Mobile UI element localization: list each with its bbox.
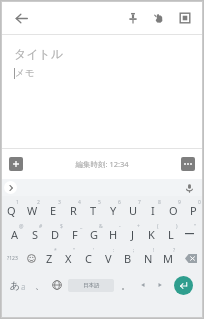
- button[interactable]: N: [138, 246, 158, 270]
- button[interactable]: Enter: [168, 270, 199, 300]
- button[interactable]: K: [142, 222, 161, 246]
- staticText: あ: [10, 279, 21, 292]
- staticText: メモ: [15, 67, 35, 79]
- staticText: H: [109, 227, 118, 242]
- staticText: R: [70, 203, 77, 218]
- staticText: 8: [158, 199, 161, 206]
- staticText: 9: [178, 199, 181, 206]
- staticText: I: [151, 203, 155, 218]
- button[interactable]: W: [22, 198, 43, 222]
- staticText: (: [157, 223, 159, 230]
- staticText: &: [99, 223, 103, 230]
- staticText: ー: [184, 227, 195, 241]
- button[interactable]: V: [98, 246, 118, 270]
- staticText: 6: [118, 199, 121, 206]
- button[interactable]: H: [104, 222, 123, 246]
- button[interactable]: Expand suggestions: [4, 181, 17, 194]
- button[interactable]: Y: [103, 198, 123, 222]
- staticText: K: [148, 227, 155, 242]
- staticText: 日本語: [83, 282, 100, 289]
- staticText: G: [90, 227, 99, 242]
- staticText: 7: [138, 199, 141, 206]
- staticText: +: [137, 223, 140, 230]
- button[interactable]: A: [5, 222, 25, 246]
- staticText: ': [93, 247, 95, 254]
- button[interactable]: Archive: [174, 7, 196, 29]
- button[interactable]: Back: [10, 7, 32, 29]
- staticText: $: [60, 223, 63, 230]
- button[interactable]: Reminder: [148, 7, 170, 29]
- staticText: _: [80, 223, 83, 230]
- button[interactable]: D: [45, 222, 65, 246]
- staticText: ?123: [7, 255, 18, 262]
- button[interactable]: あ: [5, 270, 31, 300]
- staticText: タイトル: [14, 46, 64, 61]
- staticText: J: [131, 227, 135, 242]
- button[interactable]: Change keyboard language: [48, 270, 66, 300]
- button[interactable]: Emoji: [23, 246, 40, 270]
- staticText: O: [169, 203, 178, 218]
- button[interactable]: L: [161, 222, 180, 246]
- staticText: ?: [173, 247, 176, 254]
- staticText: Y: [110, 203, 117, 218]
- staticText: ": [73, 247, 76, 254]
- button[interactable]: I: [143, 198, 163, 222]
- staticText: Z: [46, 251, 53, 266]
- staticText: T: [90, 203, 97, 218]
- staticText: #: [39, 223, 43, 230]
- button[interactable]: C: [78, 246, 98, 270]
- staticText: W: [27, 203, 38, 218]
- button[interactable]: More options: [181, 157, 195, 171]
- button[interactable]: U: [123, 198, 143, 222]
- staticText: !: [153, 247, 155, 254]
- staticText: 4: [78, 199, 81, 206]
- staticText: U: [129, 203, 138, 218]
- staticText: Q: [7, 203, 16, 218]
- staticText: P: [190, 203, 197, 218]
- staticText: @: [19, 223, 24, 230]
- staticText: A: [11, 227, 19, 242]
- staticText: 、: [35, 280, 44, 291]
- button[interactable]: G: [85, 222, 104, 246]
- button[interactable]: Add: [9, 157, 23, 171]
- button[interactable]: O: [163, 198, 183, 222]
- staticText: F: [72, 227, 78, 242]
- staticText: 5: [98, 199, 101, 206]
- button[interactable]: 、: [31, 270, 48, 300]
- button[interactable]: 。: [116, 270, 134, 300]
- button[interactable]: ー: [180, 222, 199, 246]
- staticText: X: [65, 251, 72, 266]
- button[interactable]: Pin: [122, 7, 144, 29]
- button[interactable]: Z: [40, 246, 59, 270]
- button[interactable]: S: [25, 222, 45, 246]
- staticText: 。: [121, 280, 130, 291]
- staticText: 3: [58, 199, 61, 206]
- button[interactable]: E: [43, 198, 63, 222]
- button[interactable]: Voice input: [182, 181, 196, 195]
- button[interactable]: M: [158, 246, 178, 270]
- button[interactable]: R: [63, 198, 83, 222]
- staticText: ;: [133, 247, 135, 254]
- staticText: E: [50, 203, 57, 218]
- button[interactable]: J: [123, 222, 142, 246]
- button[interactable]: Backspace: [178, 246, 203, 270]
- staticText: -: [119, 223, 121, 230]
- staticText: B: [124, 251, 132, 266]
- button[interactable]: T: [83, 198, 103, 222]
- staticText: V: [105, 251, 112, 266]
- button[interactable]: ?123: [1, 246, 23, 270]
- button[interactable]: X: [59, 246, 78, 270]
- button[interactable]: Cursor left: [134, 270, 151, 300]
- staticText: *: [54, 247, 57, 254]
- staticText: M: [163, 251, 173, 266]
- staticText: 2: [37, 199, 40, 206]
- button[interactable]: Cursor right: [151, 270, 168, 300]
- button[interactable]: F: [65, 222, 85, 246]
- staticText: L: [168, 227, 174, 242]
- button[interactable]: B: [118, 246, 138, 270]
- button[interactable]: Q: [1, 198, 22, 222]
- staticText: S: [32, 227, 39, 242]
- button[interactable]: P: [183, 198, 203, 222]
- button[interactable]: 日本語: [68, 279, 114, 292]
- staticText: N: [144, 251, 153, 266]
